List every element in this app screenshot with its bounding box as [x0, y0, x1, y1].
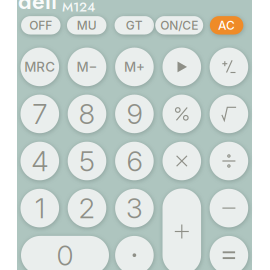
staticText: M+	[124, 59, 145, 75]
button[interactable]: 8	[68, 95, 106, 133]
staticText: OFF	[29, 18, 52, 32]
staticText: 5	[79, 144, 95, 178]
button[interactable]: Divide	[210, 142, 248, 180]
staticText: 3	[126, 191, 143, 225]
staticText: 7	[32, 97, 47, 131]
button[interactable]: ON/CE	[155, 16, 203, 34]
staticText: deli	[18, 0, 57, 17]
button[interactable]: Plus minus	[210, 48, 248, 86]
button[interactable]: M+	[115, 48, 154, 86]
staticText: ON/CE	[160, 18, 198, 32]
button[interactable]: 6	[115, 142, 154, 180]
button[interactable]: OFF	[21, 16, 60, 34]
button[interactable]: 9	[115, 95, 154, 133]
button[interactable]: 0	[21, 236, 109, 270]
button[interactable]: GT	[115, 16, 154, 34]
button[interactable]: Percent	[162, 95, 201, 133]
button[interactable]: Minus	[210, 189, 248, 227]
button[interactable]: MU	[67, 16, 106, 34]
staticText: M124	[62, 0, 95, 16]
staticText: AC	[218, 18, 235, 32]
button[interactable]: M−	[68, 48, 106, 86]
button[interactable]: Decimal point	[115, 236, 154, 270]
button[interactable]: 2	[68, 189, 106, 227]
button[interactable]: MRC	[20, 48, 59, 86]
button[interactable]: 1	[20, 189, 59, 227]
button[interactable]: Equals	[210, 236, 248, 270]
button[interactable]: Play	[162, 48, 201, 86]
button[interactable]: 4	[20, 142, 59, 180]
button[interactable]: AC	[210, 16, 243, 34]
button[interactable]: Square root	[210, 95, 248, 133]
button[interactable]: 3	[115, 189, 154, 227]
button[interactable]: 5	[68, 142, 106, 180]
staticText: 0	[56, 238, 73, 270]
staticText: MRC	[24, 59, 55, 75]
staticText: 9	[126, 97, 142, 131]
staticText: 4	[31, 144, 48, 178]
button[interactable]: 7	[20, 95, 59, 133]
staticText: 6	[126, 144, 142, 178]
staticText: GT	[126, 18, 143, 32]
staticText: MU	[77, 18, 97, 32]
button[interactable]: Plus	[162, 188, 201, 270]
staticText: 2	[78, 191, 95, 225]
staticText: 1	[35, 191, 45, 225]
staticText: M−	[76, 59, 97, 75]
staticText: 8	[78, 97, 95, 131]
button[interactable]: Multiply	[162, 142, 201, 180]
